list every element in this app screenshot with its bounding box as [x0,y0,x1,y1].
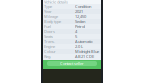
staticText: Type [44,4,52,9]
staticText: 5 [75,34,77,39]
staticText: 4 [75,29,77,34]
staticText: Sedan [75,19,85,24]
staticText: Vehicle details [44,0,68,5]
staticText: Body type [44,19,61,24]
staticText: Midnight Blue [75,49,99,54]
staticText: Petrol [75,24,85,29]
staticText: 12,450 [75,14,86,19]
staticText: Doors [44,29,55,34]
staticText: Colour [44,49,56,54]
staticText: Automatic [75,39,93,44]
staticText: Seats [44,34,53,39]
staticText: 2021 [75,9,83,14]
staticText: Trans. [44,39,55,44]
staticText: Mileage [44,14,58,19]
staticText: Reg. [44,54,51,59]
staticText: Engine [44,44,55,49]
staticText: Fuel [44,24,51,29]
staticText: Contact seller [60,61,84,66]
button[interactable]: Contact seller [43,60,101,69]
staticText: AB21 CDE [75,54,94,59]
staticText: Year [44,9,52,14]
staticText: Condition [75,4,91,9]
staticText: 2.0 L [75,44,83,49]
